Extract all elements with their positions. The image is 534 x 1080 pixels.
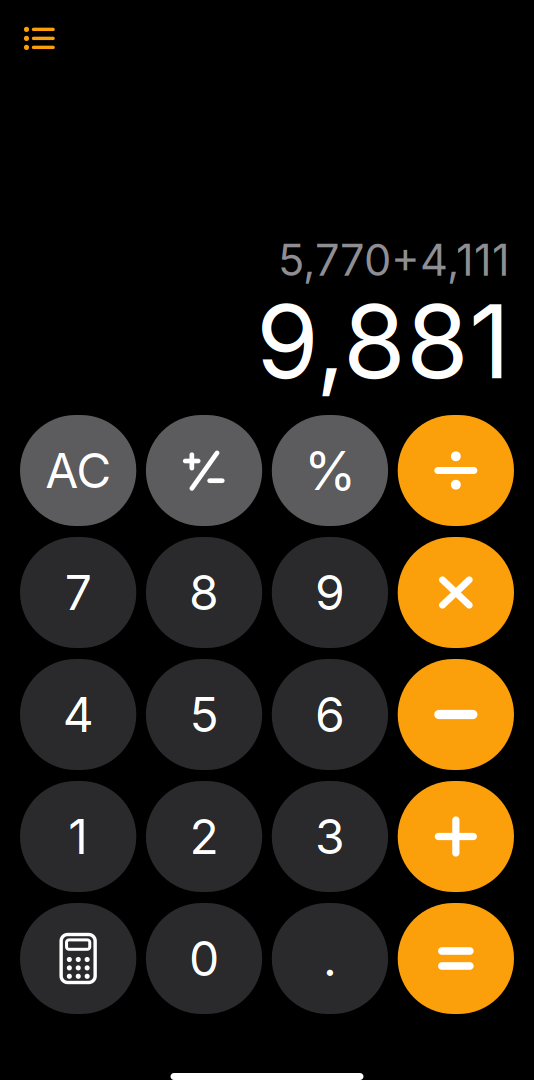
button[interactable]: Show history — [15, 15, 61, 61]
button[interactable]: 5 — [146, 659, 262, 770]
button[interactable]: % — [272, 415, 388, 526]
staticText: 9 — [315, 563, 345, 622]
staticText: 3 — [315, 807, 345, 866]
button[interactable]: Multiply — [398, 537, 514, 648]
staticText: 0 — [189, 929, 219, 988]
staticText: 4 — [63, 685, 94, 744]
staticText: 7 — [65, 563, 92, 622]
staticText: 1 — [68, 807, 88, 866]
button[interactable]: Calculator mode — [20, 903, 136, 1014]
button[interactable]: 7 — [20, 537, 136, 648]
button[interactable]: . — [272, 903, 388, 1014]
button[interactable]: Divide — [398, 415, 514, 526]
button[interactable]: AC — [20, 415, 136, 526]
staticText: 6 — [315, 685, 345, 744]
button[interactable]: 6 — [272, 659, 388, 770]
button[interactable]: 4 — [20, 659, 136, 770]
button[interactable]: Equals — [398, 903, 514, 1014]
button[interactable]: 8 — [146, 537, 262, 648]
button[interactable]: Add — [398, 781, 514, 892]
staticText: 9,881 — [256, 280, 510, 403]
button[interactable]: 1 — [20, 781, 136, 892]
staticText: 5 — [189, 685, 218, 744]
button[interactable]: 9 — [272, 537, 388, 648]
staticText: AC — [45, 441, 111, 500]
button[interactable]: 2 — [146, 781, 262, 892]
staticText: . — [323, 929, 337, 988]
button[interactable]: 0 — [146, 903, 262, 1014]
button[interactable]: Toggle sign — [146, 415, 262, 526]
staticText: 2 — [189, 807, 218, 866]
staticText: 8 — [189, 563, 219, 622]
button[interactable]: Subtract — [398, 659, 514, 770]
staticText: 5,770+4,111 — [278, 234, 510, 286]
button[interactable]: 3 — [272, 781, 388, 892]
staticText: % — [304, 438, 356, 503]
